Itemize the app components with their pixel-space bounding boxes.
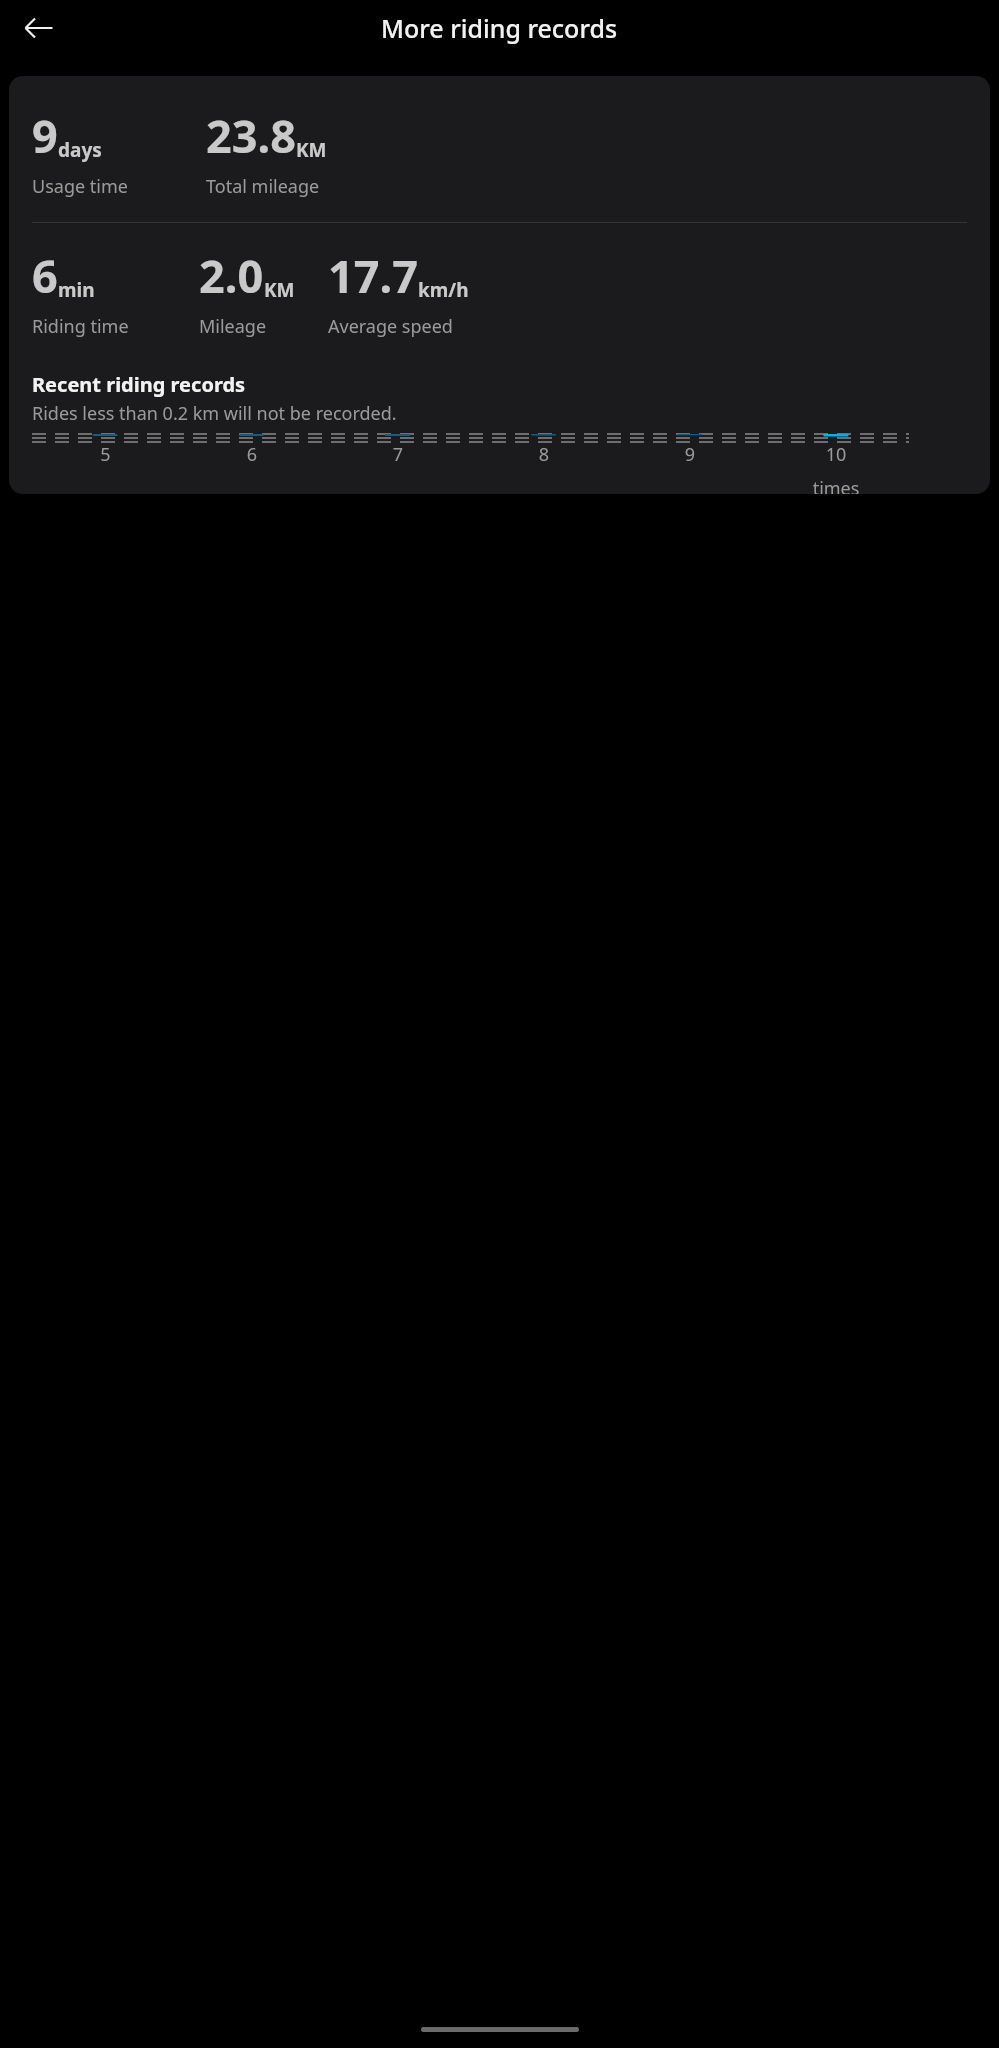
button[interactable]: Back	[16, 5, 62, 51]
staticText: KM	[296, 137, 327, 163]
staticText: 6	[32, 245, 58, 306]
staticText: 5	[32, 442, 179, 467]
staticText: 6	[179, 442, 325, 467]
staticText: 2.0	[199, 245, 264, 306]
staticText: Total mileage	[206, 174, 320, 199]
staticText: Mileage	[199, 314, 267, 339]
staticText: Recent riding records	[32, 371, 246, 398]
staticText: 8	[471, 442, 617, 467]
staticText: Riding time	[32, 314, 129, 339]
staticText: 23.8	[206, 105, 296, 166]
staticText: Usage time	[32, 174, 128, 199]
staticText: 17.7	[328, 245, 418, 306]
staticText: min	[58, 277, 95, 303]
staticText: times	[763, 476, 909, 494]
staticText: More riding records	[381, 11, 618, 45]
staticText: 9	[32, 105, 58, 166]
staticText: KM	[264, 277, 295, 303]
staticText: km/h	[418, 277, 469, 303]
staticText: Average speed	[328, 314, 453, 339]
staticText: 10	[763, 442, 909, 467]
staticText: 7	[325, 442, 471, 467]
staticText: Rides less than 0.2 km will not be recor…	[32, 401, 397, 426]
staticText: days	[58, 137, 102, 163]
staticText: 9	[617, 442, 763, 467]
